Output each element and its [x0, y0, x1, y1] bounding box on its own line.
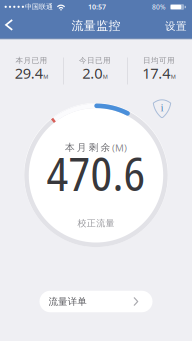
staticText: 80% [152, 2, 166, 11]
staticText: 流量监控 [71, 18, 120, 33]
staticText: 470.6 [46, 142, 145, 205]
staticText: 日均可用 [143, 56, 175, 65]
staticText: (M) [112, 141, 127, 154]
button[interactable]: 流量详单 [39, 291, 152, 312]
staticText: M [43, 73, 48, 80]
staticText: 流量详单 [48, 295, 86, 307]
staticText: M [103, 73, 108, 80]
button[interactable]: 流量说明 [152, 98, 172, 119]
staticText: M [171, 73, 176, 80]
staticText: 今日已用 [79, 56, 111, 65]
staticText: 29.4 [15, 63, 43, 83]
button[interactable]: 校正流量 [74, 214, 118, 233]
staticText: 17.4 [142, 63, 170, 83]
staticText: 本月已用 [15, 56, 47, 65]
button[interactable]: 设置 [165, 15, 192, 38]
staticText: 10:57 [88, 2, 106, 12]
staticText: 2.0 [82, 63, 102, 83]
staticText: i [160, 101, 163, 114]
staticText: 本月剩余 [65, 141, 110, 154]
staticText: 中国联通 [25, 2, 53, 11]
staticText: 校正流量 [78, 218, 114, 229]
button[interactable]: 返回 [0, 15, 14, 38]
staticText: 设置 [165, 20, 187, 33]
